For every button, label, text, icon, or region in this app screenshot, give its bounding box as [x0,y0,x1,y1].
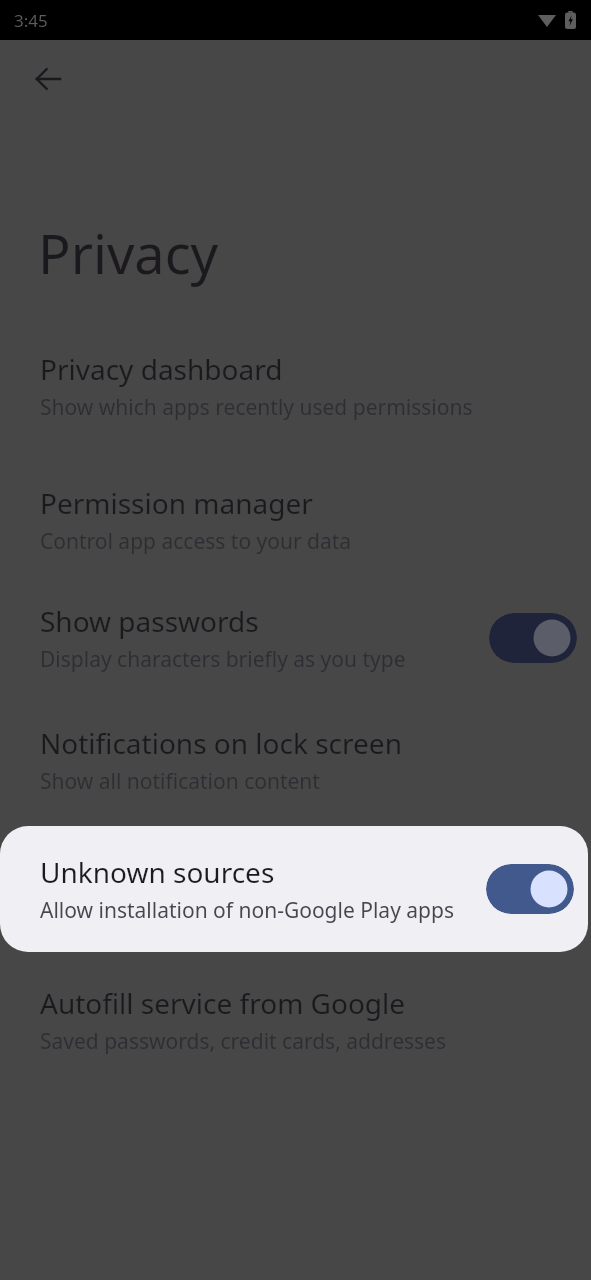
staticText: Show which apps recently used permission… [40,393,473,422]
button[interactable]: Show passwords [0,602,591,674]
staticText: Display characters briefly as you type [40,645,406,674]
staticText: Allow installation of non-Google Play ap… [40,896,454,925]
staticText: Saved passwords, credit cards, addresses [40,1027,446,1056]
staticText: Show passwords [40,602,259,640]
button[interactable]: Permission manager [0,484,591,556]
staticText: Unknown sources [40,853,275,891]
button[interactable]: Privacy dashboard [0,350,591,422]
staticText: Notifications on lock screen [40,724,402,762]
staticText: Privacy dashboard [40,350,283,388]
button[interactable]: Autofill service from Google [0,984,591,1056]
staticText: Control app access to your data [40,527,352,556]
staticText: Autofill service from Google [40,984,406,1022]
button[interactable]: Unknown sources [0,826,588,952]
staticText: Permission manager [40,484,313,522]
staticText: 3:45 [14,9,48,32]
button[interactable]: Back [20,51,76,107]
button[interactable]: Toggle setting [489,613,577,663]
staticText: Privacy [38,216,219,290]
button[interactable]: Toggle setting [486,864,574,914]
button[interactable]: Notifications on lock screen [0,724,591,796]
staticText: Show all notification content [40,767,320,796]
